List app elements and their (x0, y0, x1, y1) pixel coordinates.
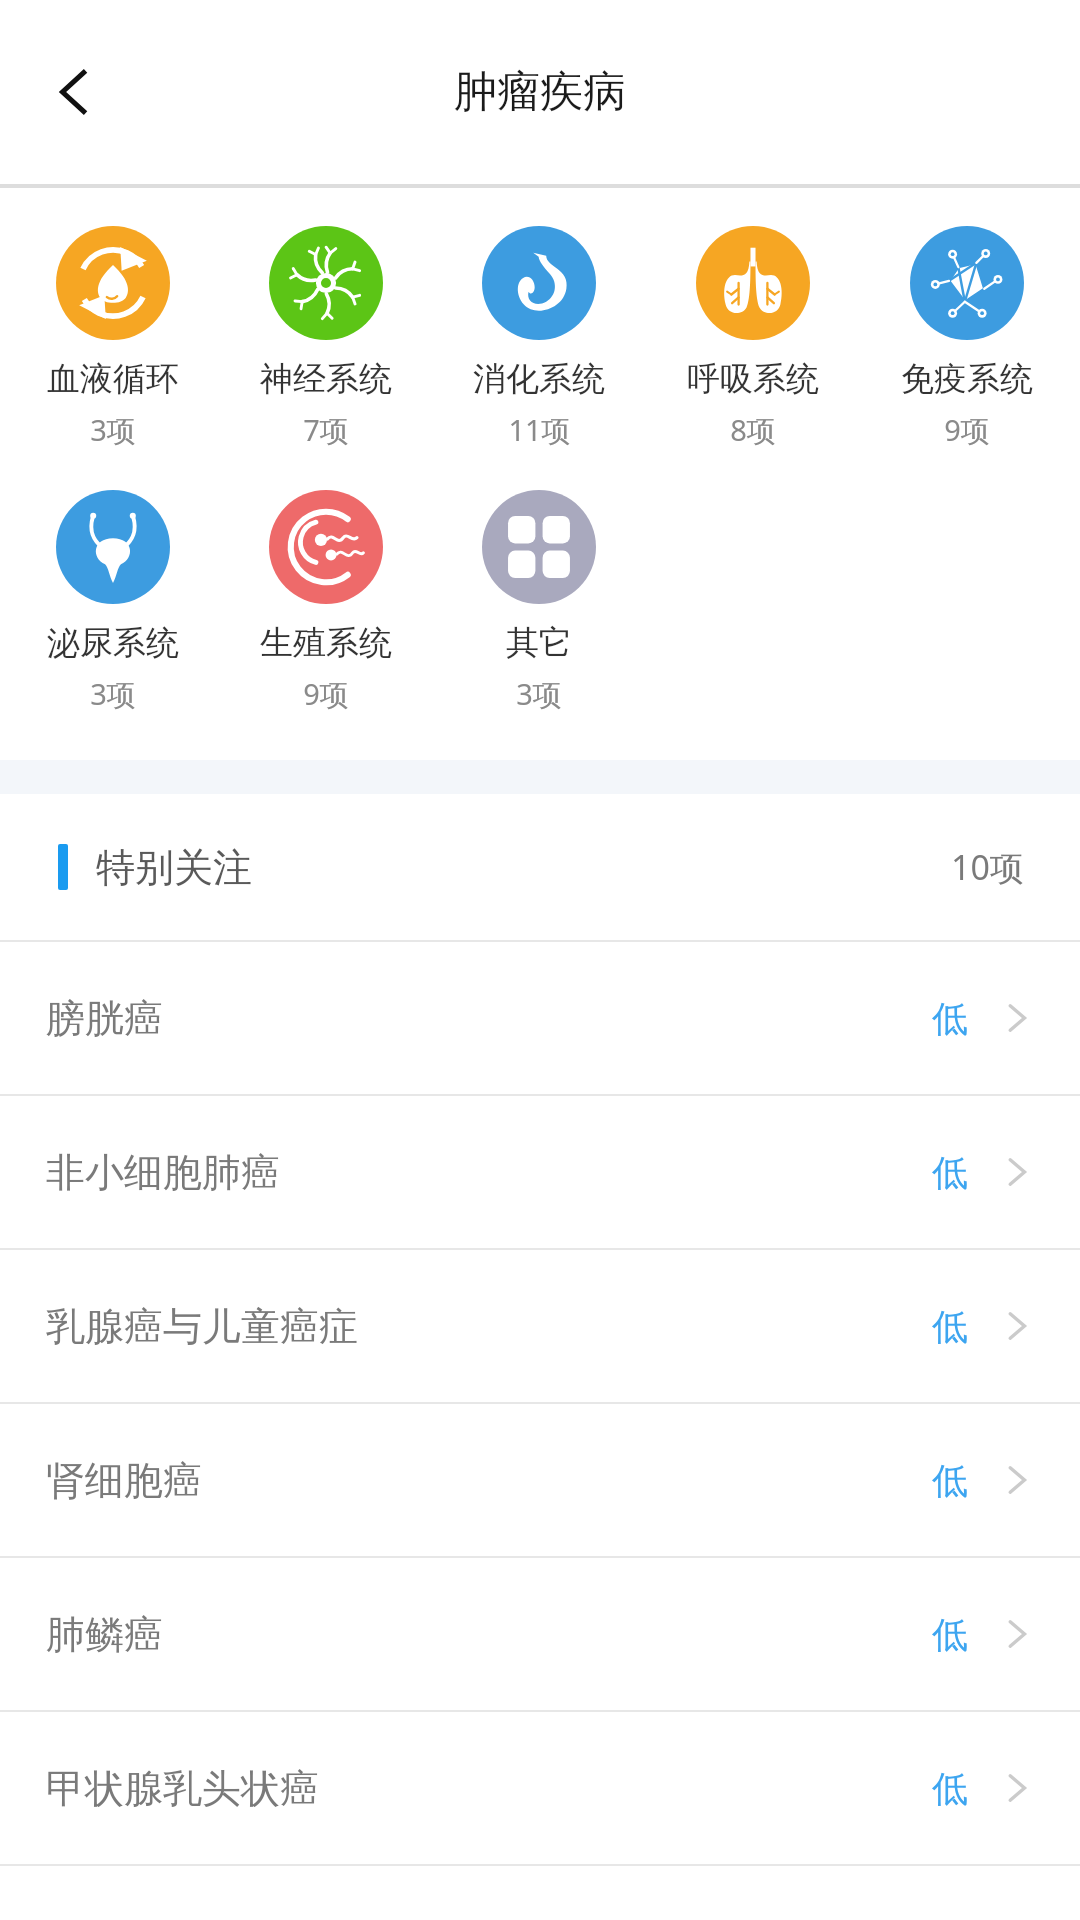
other: Open (1000, 1463, 1034, 1497)
staticText: 其它 (506, 622, 572, 664)
staticText: 低 (932, 996, 968, 1041)
button[interactable]: Back (20, 37, 130, 147)
staticText: 9项 (303, 674, 349, 714)
other: Open (1000, 1771, 1034, 1805)
button[interactable]: 生殖系统 (219, 488, 432, 716)
staticText: 肿瘤疾病 (454, 65, 626, 119)
staticText: 3项 (90, 410, 136, 450)
button[interactable]: 泌尿系统 (6, 488, 219, 716)
button[interactable]: 血液循环 (6, 224, 219, 452)
staticText: 消化系统 (473, 358, 605, 400)
staticText: 免疫系统 (901, 358, 1033, 400)
staticText: 肾细胞癌 (46, 1456, 202, 1505)
button[interactable]: 甲状腺乳头状癌 (0, 1712, 1080, 1864)
staticText: 9项 (944, 410, 990, 450)
button[interactable]: 免疫系统 (860, 224, 1074, 452)
staticText: 膀胱癌 (46, 994, 163, 1043)
staticText: 肺鳞癌 (46, 1610, 163, 1659)
button[interactable]: 肾细胞癌 (0, 1404, 1080, 1556)
other: Open (1000, 1617, 1034, 1651)
button[interactable]: 消化系统 (432, 224, 646, 452)
button[interactable]: 膀胱癌 (0, 942, 1080, 1094)
button[interactable]: 肺鳞癌 (0, 1558, 1080, 1710)
staticText: 泌尿系统 (47, 622, 179, 664)
other: Open (1000, 1001, 1034, 1035)
button[interactable]: 非小细胞肺癌 (0, 1096, 1080, 1248)
staticText: 乳腺癌与儿童癌症 (46, 1302, 358, 1351)
staticText: 8项 (730, 410, 776, 450)
staticText: 神经系统 (260, 358, 392, 400)
button[interactable]: 呼吸系统 (646, 224, 860, 452)
staticText: 低 (932, 1612, 968, 1657)
staticText: 低 (932, 1304, 968, 1349)
staticText: 11项 (508, 410, 571, 450)
staticText: 特别关注 (96, 843, 252, 892)
staticText: 非小细胞肺癌 (46, 1148, 280, 1197)
staticText: 3项 (90, 674, 136, 714)
staticText: 7项 (303, 410, 349, 450)
staticText: 低 (932, 1150, 968, 1195)
staticText: 甲状腺乳头状癌 (46, 1764, 319, 1813)
button[interactable]: 神经系统 (219, 224, 432, 452)
other: Open (1000, 1309, 1034, 1343)
button[interactable]: 其它 (432, 488, 646, 716)
staticText: 生殖系统 (260, 622, 392, 664)
staticText: 3项 (516, 674, 562, 714)
button[interactable]: 乳腺癌与儿童癌症 (0, 1250, 1080, 1402)
staticText: 低 (932, 1766, 968, 1811)
staticText: 血液循环 (47, 358, 179, 400)
staticText: 呼吸系统 (687, 358, 819, 400)
button[interactable]: 特别关注 (0, 794, 1080, 940)
other: Open (1000, 1155, 1034, 1189)
staticText: 低 (932, 1458, 968, 1503)
staticText: 10项 (951, 844, 1024, 890)
